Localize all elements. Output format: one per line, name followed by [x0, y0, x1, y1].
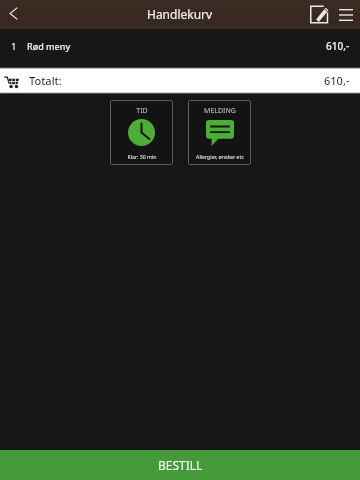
staticText: TID [136, 106, 148, 116]
staticText: 1 [11, 40, 17, 53]
button[interactable]: TID [110, 100, 173, 165]
staticText: MELDING [204, 106, 236, 116]
staticText: Rød meny [27, 40, 71, 52]
button[interactable]: Menu [334, 0, 358, 29]
button[interactable]: BESTILL [0, 450, 360, 480]
button[interactable]: Back [0, 2, 26, 28]
staticText: Allergier, ønsker etc [196, 153, 244, 160]
button[interactable]: Edit [304, 0, 334, 29]
staticText: 610,- [326, 39, 350, 53]
button[interactable]: 1 [0, 29, 360, 67]
button[interactable]: MELDING [188, 100, 251, 165]
staticText: Klar: 30 min [127, 153, 157, 160]
button[interactable]: Totalt: [0, 67, 360, 94]
staticText: BESTILL [158, 457, 203, 473]
staticText: Handlekurv [147, 6, 213, 22]
staticText: Totalt: [29, 73, 62, 88]
staticText: 610,- [324, 73, 350, 88]
